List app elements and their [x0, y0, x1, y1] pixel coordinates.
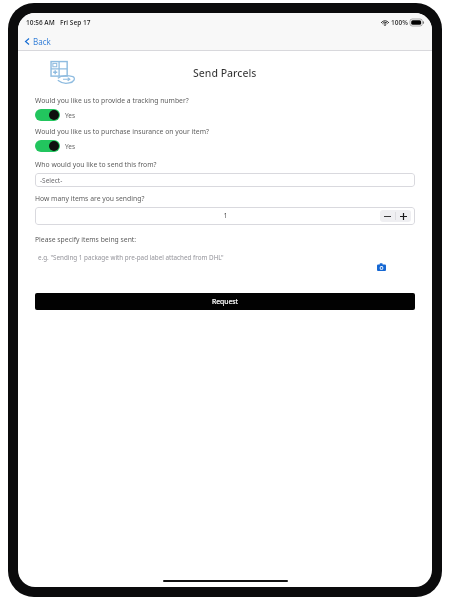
staticText: 1	[223, 211, 228, 221]
button[interactable]: Yes	[35, 139, 76, 153]
button[interactable]: Increase quantity	[396, 210, 411, 222]
button[interactable]: -Select-	[35, 173, 415, 187]
staticText: Back	[33, 36, 51, 47]
button[interactable]: Back	[18, 33, 59, 50]
staticText: Would you like us to provide a tracking …	[35, 96, 189, 105]
staticText: 100%	[391, 18, 408, 27]
button[interactable]: Decrease quantity	[380, 210, 395, 222]
staticText: -Select-	[40, 176, 63, 185]
staticText: How many items are you sending?	[35, 194, 145, 203]
button[interactable]: Request	[35, 293, 415, 310]
staticText: Yes	[65, 111, 76, 120]
staticText: Please specify items being sent:	[35, 235, 137, 244]
staticText: 10:56 AM	[26, 18, 55, 27]
staticText: Fri Sep 17	[60, 18, 91, 27]
button[interactable]: Add photo	[375, 261, 387, 273]
staticText: Request	[212, 297, 238, 306]
staticText: Who would you like to send this from?	[35, 160, 157, 169]
staticText: Yes	[65, 142, 76, 151]
button[interactable]: e.g. "Sending 1 package with pre-pad lab…	[35, 249, 415, 285]
staticText: Would you like us to purchase insurance …	[35, 127, 209, 136]
button[interactable]: Yes	[35, 108, 76, 122]
staticText: e.g. "Sending 1 package with pre-pad lab…	[38, 253, 224, 262]
staticText: Send Parcels	[193, 66, 257, 80]
